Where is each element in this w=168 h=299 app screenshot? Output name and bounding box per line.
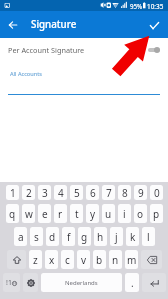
staticText: e bbox=[42, 207, 48, 221]
button[interactable]: y bbox=[86, 204, 99, 223]
staticText: c bbox=[65, 253, 70, 267]
staticText: g bbox=[81, 230, 88, 244]
button[interactable]: k bbox=[126, 227, 139, 246]
button[interactable]: q bbox=[6, 204, 19, 223]
staticText: x bbox=[49, 253, 55, 267]
staticText: t bbox=[75, 207, 79, 221]
button[interactable]: Shift bbox=[7, 250, 26, 269]
button[interactable]: 5 bbox=[70, 185, 83, 200]
button[interactable]: 8 bbox=[118, 185, 131, 200]
staticText: p bbox=[153, 207, 160, 221]
button[interactable]: j bbox=[110, 227, 123, 246]
staticText: 4 bbox=[58, 186, 64, 200]
button[interactable]: Nederlands bbox=[41, 273, 122, 292]
button[interactable]: o bbox=[134, 204, 147, 223]
staticText: 2 bbox=[26, 186, 32, 200]
staticText: z bbox=[33, 253, 38, 267]
button[interactable]: d bbox=[46, 227, 59, 246]
staticText: m bbox=[127, 253, 137, 267]
button[interactable]: . bbox=[125, 273, 139, 292]
staticText: 95% bbox=[130, 2, 143, 10]
staticText: u bbox=[105, 207, 112, 221]
staticText: w bbox=[25, 207, 33, 221]
button[interactable]: x bbox=[45, 250, 58, 269]
staticText: Per Account Signature bbox=[8, 45, 85, 55]
staticText: Signature bbox=[31, 18, 77, 31]
button[interactable]: 2 bbox=[22, 185, 35, 200]
button[interactable]: 4 bbox=[54, 185, 67, 200]
staticText: 5 bbox=[74, 186, 80, 200]
button[interactable]: Per Account Signature bbox=[0, 38, 168, 62]
staticText: a bbox=[18, 230, 24, 244]
button[interactable]: Settings bbox=[23, 273, 38, 292]
button[interactable]: t bbox=[70, 204, 83, 223]
staticText: 3 bbox=[42, 186, 48, 200]
staticText: o bbox=[137, 207, 144, 221]
staticText: d bbox=[49, 230, 56, 244]
staticText: y bbox=[90, 207, 96, 221]
button[interactable]: a bbox=[14, 227, 27, 246]
staticText: f bbox=[67, 230, 71, 244]
button[interactable]: s bbox=[30, 227, 43, 246]
button[interactable]: h bbox=[94, 227, 107, 246]
button[interactable]: p bbox=[150, 204, 163, 223]
button[interactable]: c bbox=[61, 250, 74, 269]
staticText: 10:35 bbox=[147, 2, 164, 11]
staticText: Nederlands bbox=[65, 279, 98, 287]
staticText: i bbox=[123, 207, 126, 221]
staticText: n bbox=[112, 253, 119, 267]
button[interactable]: w bbox=[22, 204, 35, 223]
button[interactable]: Save bbox=[143, 12, 165, 38]
staticText: k bbox=[130, 230, 136, 244]
button[interactable]: Backspace bbox=[141, 250, 162, 269]
button[interactable]: n bbox=[109, 250, 122, 269]
staticText: l bbox=[147, 230, 150, 244]
button[interactable]: Symbols bbox=[3, 273, 20, 292]
button[interactable]: e bbox=[38, 204, 51, 223]
button[interactable]: g bbox=[78, 227, 91, 246]
button[interactable]: 9 bbox=[134, 185, 147, 200]
staticText: b bbox=[96, 253, 103, 267]
staticText: 0 bbox=[154, 186, 160, 200]
staticText: 6 bbox=[90, 186, 96, 200]
staticText: s bbox=[34, 230, 39, 244]
staticText: . bbox=[131, 276, 134, 290]
button[interactable]: 0 bbox=[150, 185, 163, 200]
button[interactable]: z bbox=[29, 250, 42, 269]
button[interactable]: r bbox=[54, 204, 67, 223]
button[interactable]: 7 bbox=[102, 185, 115, 200]
staticText: 1 bbox=[10, 186, 16, 200]
staticText: q bbox=[9, 207, 16, 221]
staticText: !1 bbox=[6, 278, 12, 288]
staticText: 8 bbox=[122, 186, 128, 200]
staticText: 9 bbox=[138, 186, 144, 200]
button[interactable]: 1 bbox=[6, 185, 19, 200]
button[interactable]: Enter bbox=[142, 273, 166, 292]
button[interactable]: u bbox=[102, 204, 115, 223]
staticText: 7 bbox=[106, 186, 112, 200]
button[interactable]: f bbox=[62, 227, 75, 246]
button[interactable]: i bbox=[118, 204, 131, 223]
staticText: h bbox=[97, 230, 104, 244]
staticText: All Accounts bbox=[10, 70, 42, 78]
button[interactable]: Navigate up bbox=[0, 12, 26, 38]
button[interactable]: b bbox=[93, 250, 106, 269]
button[interactable]: m bbox=[125, 250, 138, 269]
staticText: v bbox=[81, 253, 87, 267]
button[interactable]: 6 bbox=[86, 185, 99, 200]
staticText: r bbox=[58, 207, 63, 221]
staticText: j bbox=[115, 230, 118, 244]
button[interactable]: l bbox=[142, 227, 155, 246]
button[interactable]: 3 bbox=[38, 185, 51, 200]
button[interactable]: v bbox=[77, 250, 90, 269]
